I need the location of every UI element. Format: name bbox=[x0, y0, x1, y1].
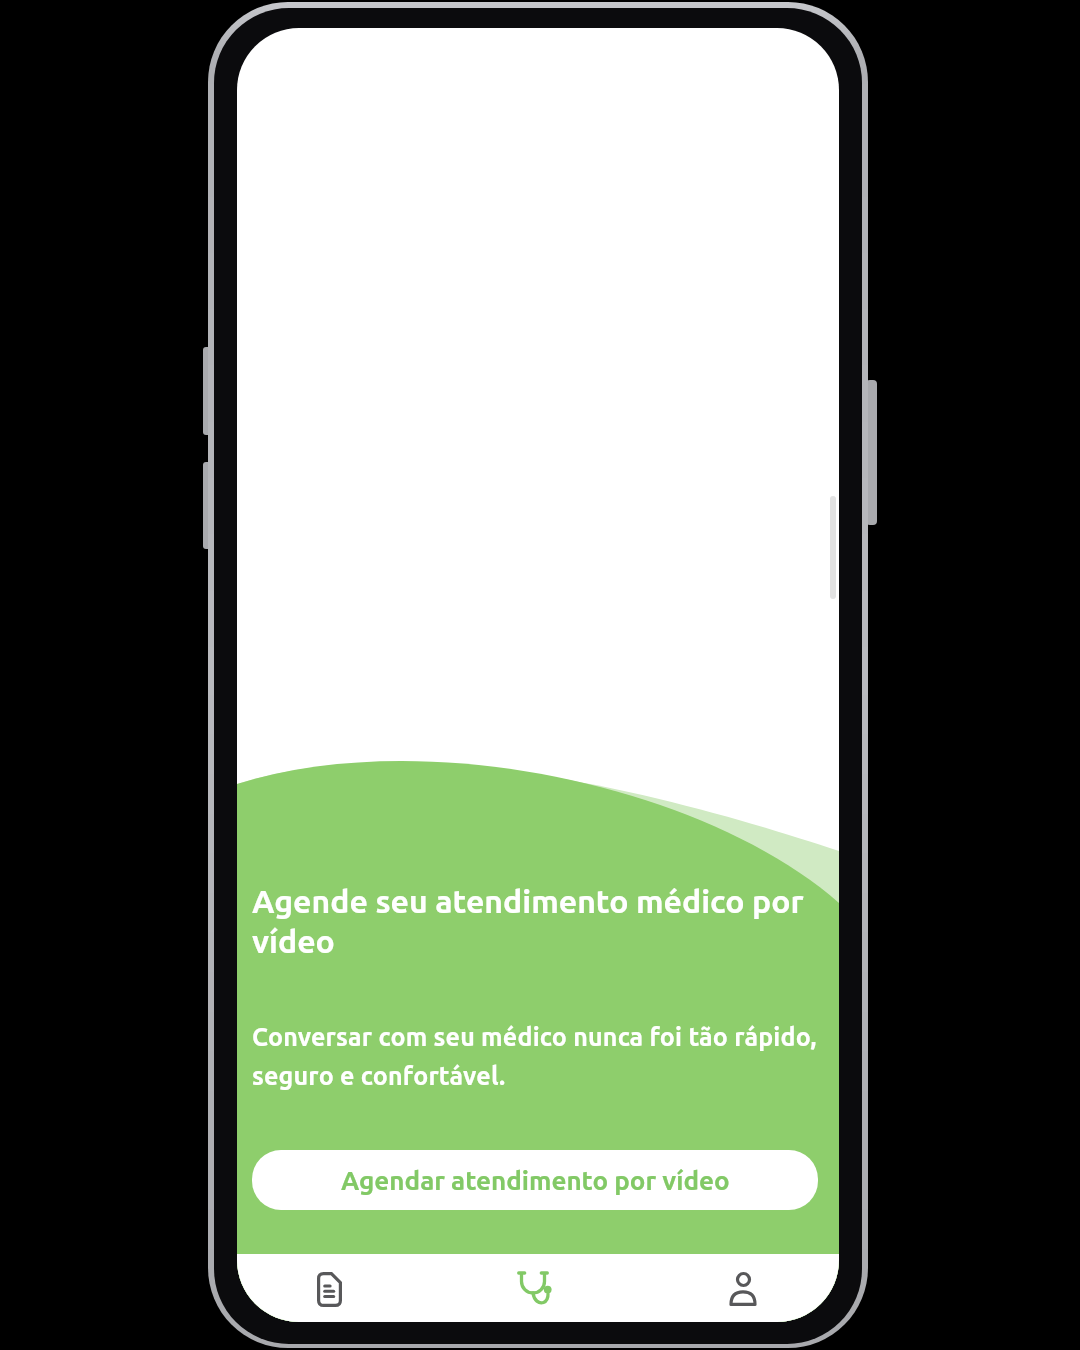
button[interactable] bbox=[638, 1254, 839, 1322]
button[interactable]: Agendar atendimento por vídeo bbox=[252, 1150, 818, 1210]
button[interactable] bbox=[237, 1254, 437, 1322]
staticText: Conversar com seu médico nunca foi tão r… bbox=[252, 1023, 817, 1089]
staticText: Agendar atendimento por vídeo bbox=[341, 1166, 730, 1195]
button[interactable] bbox=[437, 1254, 638, 1322]
staticText: Agende seu atendimento médico por vídeo bbox=[252, 883, 804, 959]
